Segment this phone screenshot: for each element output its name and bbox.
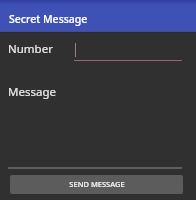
staticText: Message [8, 84, 56, 100]
staticText: SEND MESSAGE [69, 179, 125, 189]
staticText: Number [8, 41, 53, 57]
staticText: Secret Message [9, 12, 88, 26]
button[interactable]: SEND MESSAGE [10, 175, 183, 194]
